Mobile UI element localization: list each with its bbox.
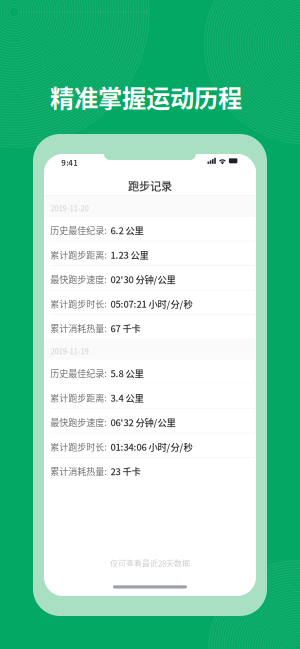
staticText: 2019-11-20 <box>51 203 89 213</box>
staticText: 精准掌握运动历程 <box>50 79 242 114</box>
button[interactable]: 累计消耗热量: <box>44 315 256 339</box>
staticText: 累计跑步时长: <box>50 297 107 310</box>
staticText: 01:34:06 小时/分/秒 <box>111 440 193 453</box>
staticText: 累计跑步时长: <box>50 440 107 453</box>
button[interactable]: 累计跑步时长: <box>44 290 256 314</box>
button[interactable]: 历史最佳纪录: <box>44 360 256 384</box>
staticText: 累计跑步距离: <box>50 391 107 404</box>
staticText: 最快跑步速度: <box>50 273 107 286</box>
button[interactable]: 累计跑步时长: <box>44 433 256 457</box>
staticText: 2019-11-19 <box>51 346 89 356</box>
staticText: 历史最佳纪录: <box>50 224 107 237</box>
staticText: 1.23 公里 <box>111 248 149 261</box>
button[interactable]: 最快跑步速度: <box>44 266 256 290</box>
staticText: 23 千卡 <box>111 464 141 478</box>
staticText: 累计消耗热量: <box>50 464 107 478</box>
button[interactable]: 最快跑步速度: <box>44 409 256 433</box>
staticText: 6.2 公里 <box>111 223 144 237</box>
button[interactable]: 历史最佳纪录: <box>44 217 256 241</box>
button[interactable]: 累计消耗热量: <box>44 458 256 482</box>
staticText: 累计跑步距离: <box>50 248 107 261</box>
staticText: 05:07:21 小时/分/秒 <box>111 297 193 310</box>
staticText: 仅可查看最近28天数据 <box>110 557 190 569</box>
staticText: 02'30 分钟/公里 <box>111 272 176 286</box>
staticText: 累计消耗热量: <box>50 322 107 335</box>
staticText: 最快跑步速度: <box>50 415 107 429</box>
staticText: 跑步记录 <box>128 178 172 194</box>
button[interactable]: 累计跑步距离: <box>44 384 256 408</box>
staticText: 5.8 公里 <box>111 366 144 380</box>
button[interactable]: 累计跑步距离: <box>44 241 256 265</box>
staticText: 9:41 <box>61 156 78 168</box>
staticText: 历史最佳纪录: <box>50 366 107 380</box>
staticText: 3.4 公里 <box>111 391 144 404</box>
staticText: 06'32 分钟/公里 <box>111 415 176 429</box>
staticText: 67 千卡 <box>111 321 141 335</box>
